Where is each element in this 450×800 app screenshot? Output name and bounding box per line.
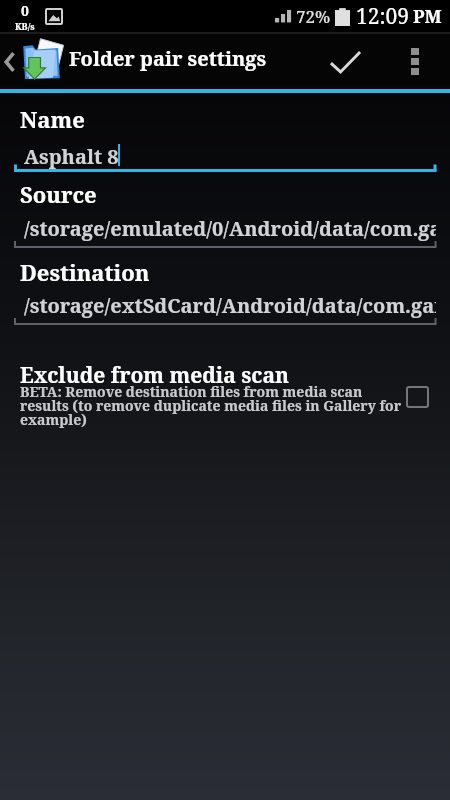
staticText: KB/s xyxy=(15,20,35,32)
staticText: Asphalt 8 xyxy=(24,143,436,170)
staticText: Destination xyxy=(20,257,150,287)
button[interactable]: Save xyxy=(310,34,380,89)
staticText: Folder pair settings xyxy=(69,45,267,72)
staticText: Source xyxy=(20,179,97,209)
staticText: Name xyxy=(20,104,85,134)
staticText: PM xyxy=(413,4,442,29)
staticText: BETA: Remove destination files from medi… xyxy=(20,382,408,429)
staticText: Exclude from media scan xyxy=(20,361,290,390)
staticText: 72% xyxy=(296,5,331,28)
staticText: 0 xyxy=(21,1,29,20)
button[interactable]: Navigate up xyxy=(0,34,66,89)
staticText: /storage/emulated/0/Android/data/com.gam… xyxy=(24,215,436,242)
staticText: 12:09 xyxy=(356,2,409,31)
staticText: /storage/extSdCard/Android/data/com.game… xyxy=(24,292,436,319)
button[interactable]: More options xyxy=(380,34,450,89)
button[interactable]: Exclude from media scan xyxy=(0,361,450,437)
